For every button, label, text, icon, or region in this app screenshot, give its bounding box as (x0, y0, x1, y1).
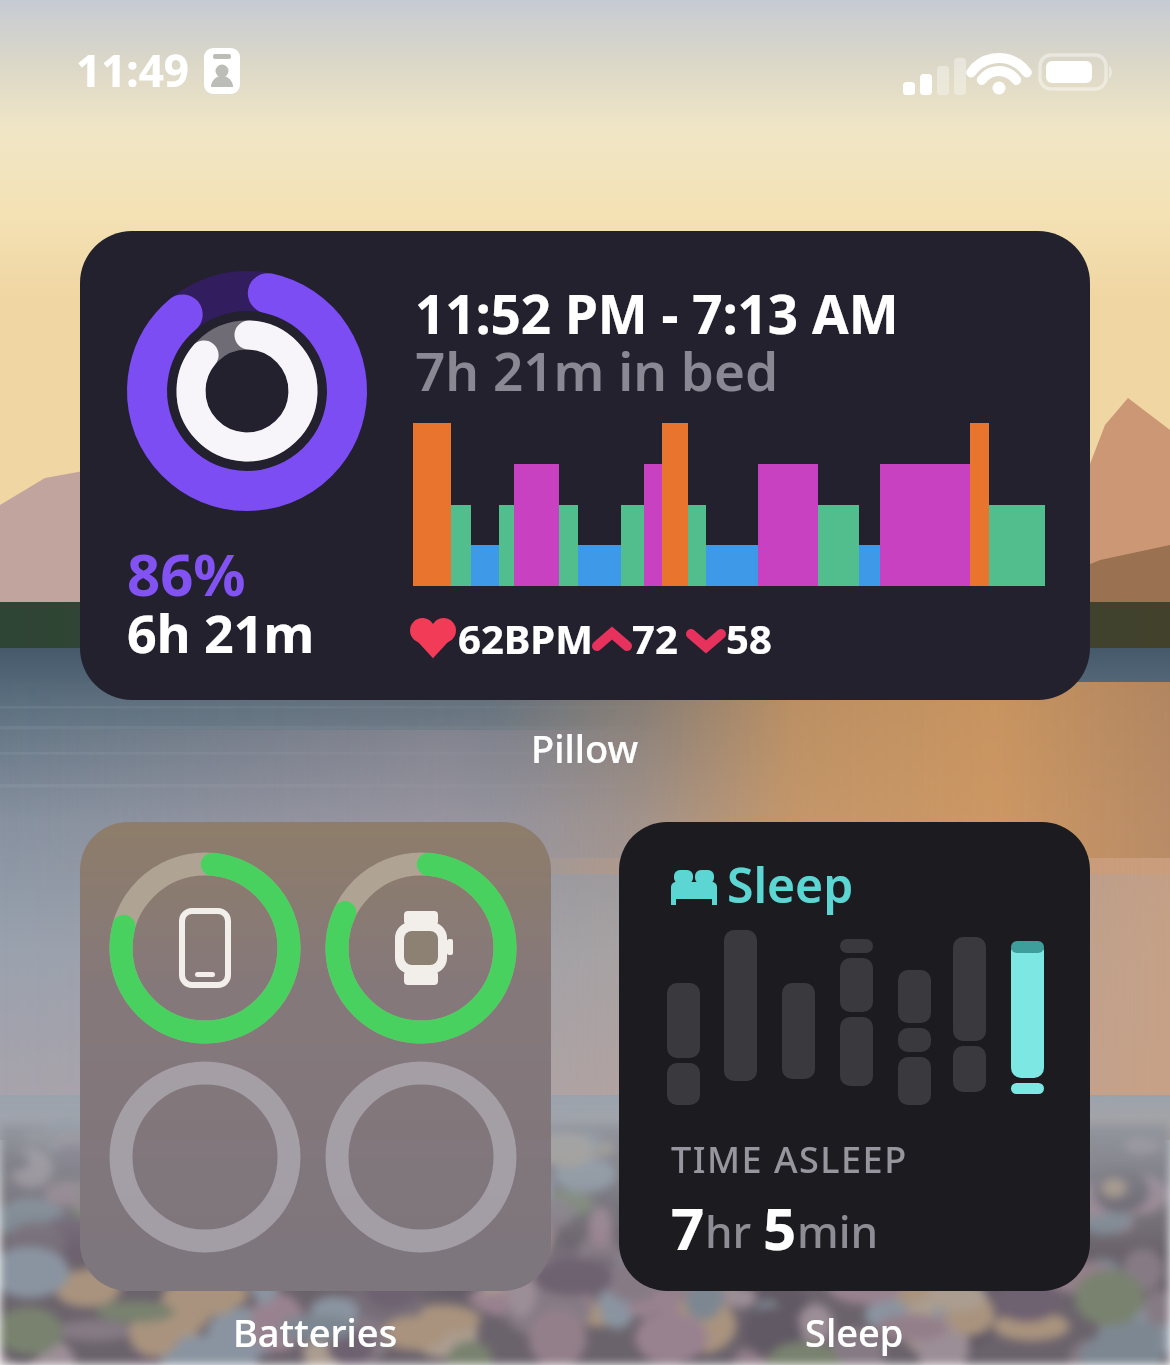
staticText: 7h 21m in bed (415, 334, 779, 406)
staticText: 62BPM (458, 611, 593, 665)
staticText: Sleep (805, 1306, 904, 1358)
button[interactable] (80, 822, 551, 1291)
staticText: Sleep (727, 852, 854, 917)
staticText: 11:52 PM - 7:13 AM (415, 277, 899, 349)
staticText: 72 (632, 611, 678, 665)
staticText: min (797, 1201, 879, 1261)
staticText: 11:49 (76, 40, 190, 100)
button[interactable]: Sleep (619, 822, 1090, 1291)
button[interactable]: 86% (80, 231, 1090, 700)
staticText: 86% (127, 534, 246, 613)
staticText: TIME ASLEEP (671, 1135, 908, 1184)
staticText: Batteries (233, 1306, 398, 1358)
staticText: 7 (671, 1188, 705, 1267)
staticText: Pillow (531, 722, 639, 774)
staticText: hr (705, 1201, 763, 1261)
staticText: 5 (763, 1188, 797, 1267)
staticText: 58 (726, 611, 772, 665)
staticText: 6h 21m (127, 597, 315, 668)
